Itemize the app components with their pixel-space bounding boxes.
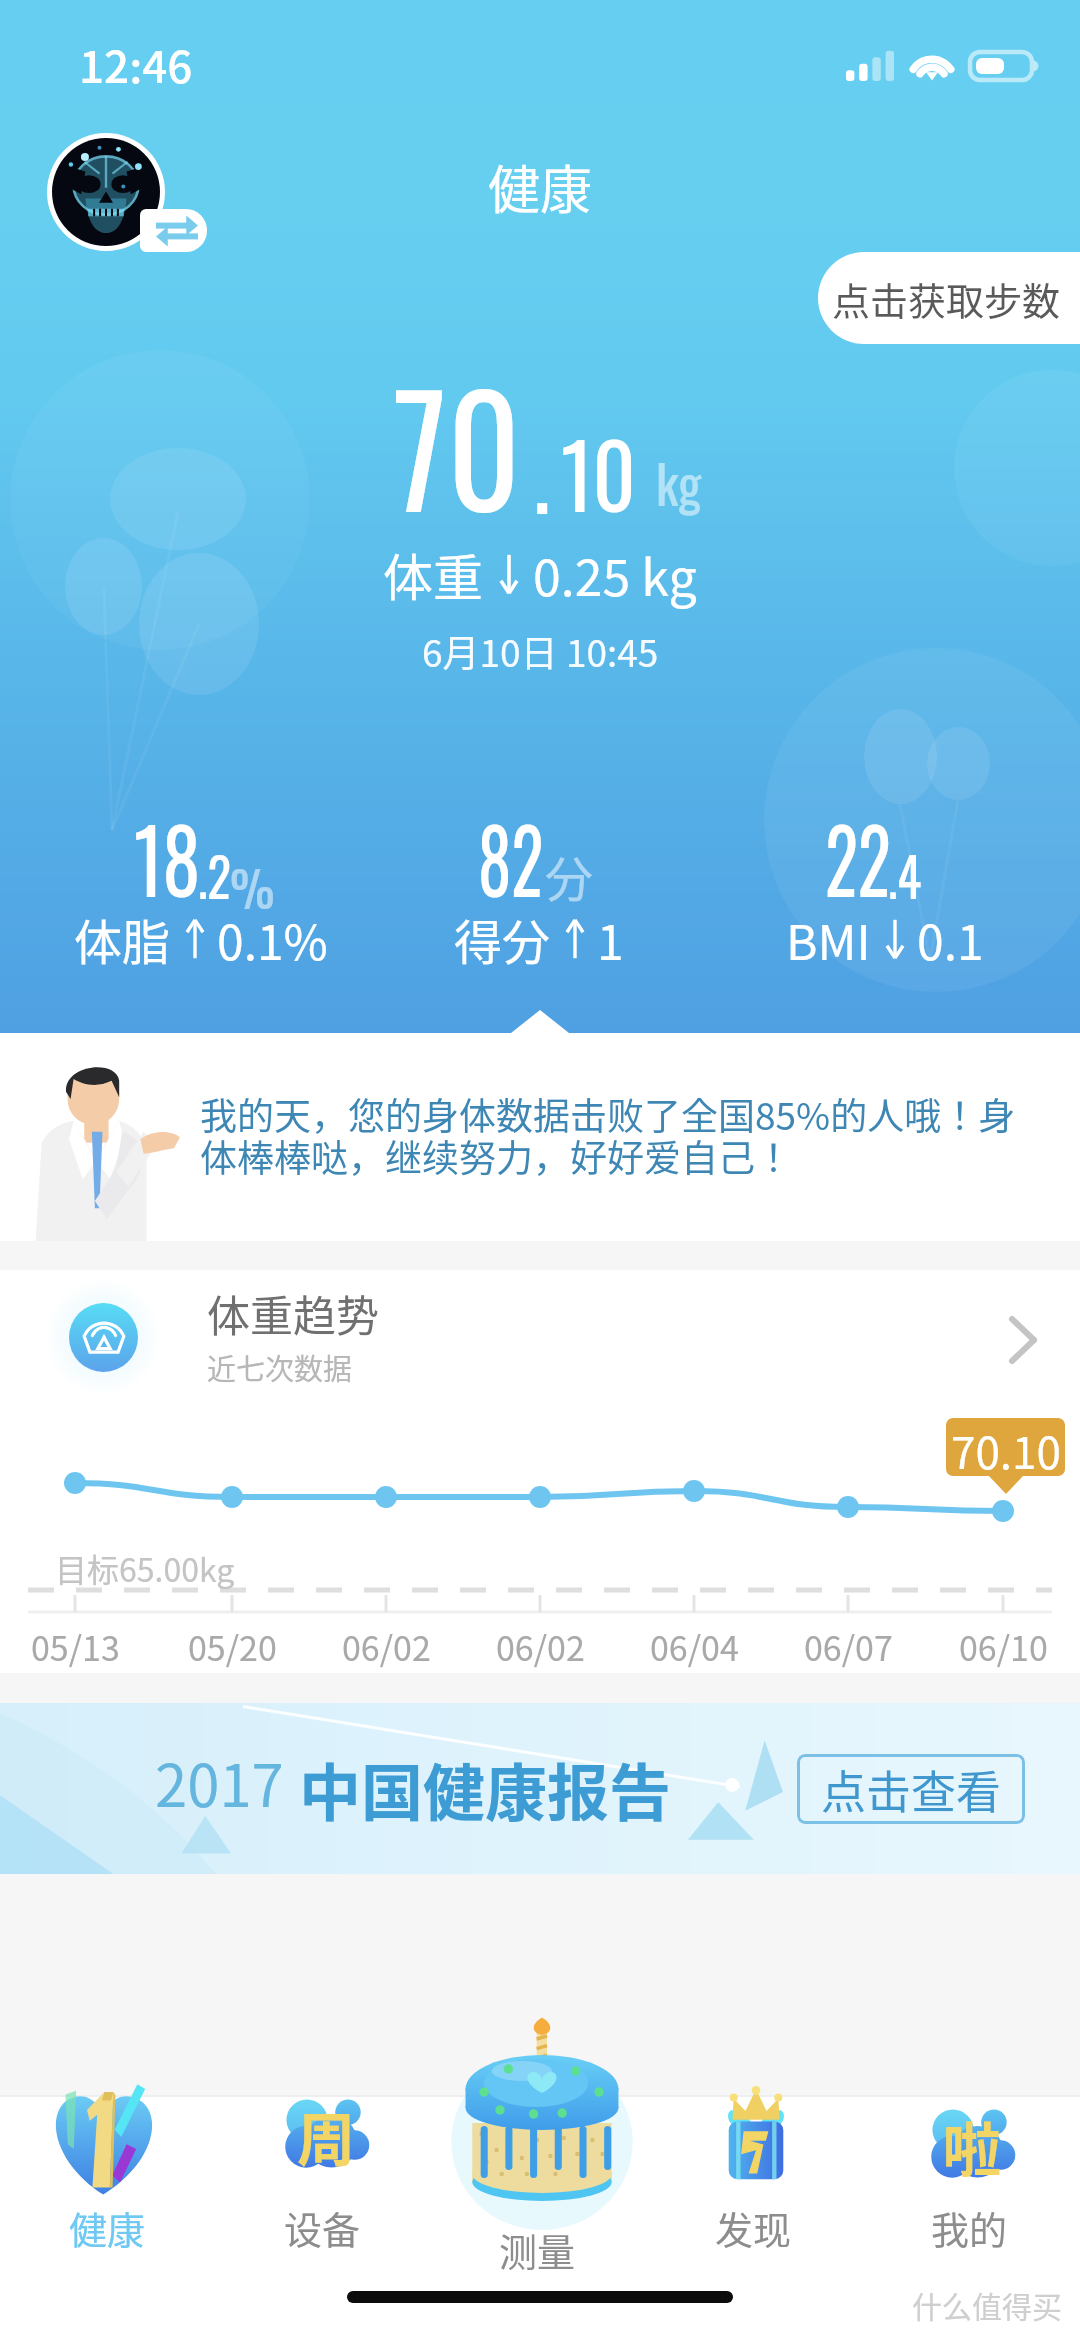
button[interactable] <box>0 2095 216 2339</box>
staticText: 06/02 <box>496 1622 585 1671</box>
button[interactable] <box>648 2095 864 2339</box>
staticText: 06/07 <box>804 1622 893 1671</box>
staticText: .4 <box>888 835 922 915</box>
button[interactable]: 点击获取步数 <box>818 252 1080 344</box>
staticText: . <box>533 407 550 540</box>
staticText: kg <box>656 444 702 521</box>
staticText: 点击查看 <box>821 1757 1002 1822</box>
staticText: BMI <box>786 904 871 974</box>
button[interactable]: 点击查看 <box>797 1754 1025 1824</box>
staticText: 22 <box>825 792 891 922</box>
staticText: 得分 <box>454 904 551 974</box>
staticText: 0.1 <box>917 904 984 974</box>
staticText: 1 <box>597 904 624 974</box>
staticText: 05/13 <box>31 1622 120 1671</box>
staticText: 设备 <box>284 2200 361 2255</box>
staticText: 06/10 <box>959 1622 1048 1671</box>
staticText: 06/04 <box>650 1622 739 1671</box>
staticText: 06/02 <box>342 1622 431 1671</box>
staticText: 分 <box>545 841 594 911</box>
staticText: 周 <box>297 2094 356 2178</box>
staticText: 05/20 <box>188 1622 277 1671</box>
staticText: 什么值得买 <box>912 2283 1062 2326</box>
staticText: 点击获取步数 <box>832 271 1061 326</box>
staticText: 目标65.00kg <box>55 1545 235 1591</box>
staticText: 体重 <box>383 538 483 610</box>
staticText: 啦 <box>943 2104 1002 2188</box>
button[interactable]: Profile avatar <box>47 131 165 252</box>
button[interactable] <box>216 2095 432 2339</box>
button[interactable]: Switch account <box>140 209 207 252</box>
staticText: 体重趋势 <box>207 1282 379 1344</box>
staticText: .2 <box>198 835 231 915</box>
staticText: 82 <box>478 792 543 922</box>
staticText: 10 <box>561 406 636 538</box>
button[interactable] <box>432 2095 648 2339</box>
staticText: 0.25 kg <box>533 538 697 610</box>
staticText: 测量 <box>499 2222 576 2277</box>
staticText: 0.1% <box>217 904 328 974</box>
staticText: 我的 <box>931 2200 1008 2255</box>
staticText: 中国健康报告 <box>299 1744 672 1834</box>
staticText: 我的天，您的身体数据击败了全国85%的人哦！身体棒棒哒，继续努力，好好爱自己！ <box>200 1087 1050 1182</box>
staticText: 70 <box>393 333 521 555</box>
staticText: 健康 <box>69 2200 146 2255</box>
staticText: 体脂 <box>74 904 171 974</box>
staticText: 2017 <box>155 1740 284 1824</box>
staticText: 18 <box>134 792 201 922</box>
staticText: % <box>230 849 275 923</box>
staticText: 发现 <box>715 2200 792 2255</box>
button[interactable] <box>864 2095 1080 2339</box>
staticText: 6月10日 10:45 <box>422 624 659 678</box>
staticText: 近七次数据 <box>207 1346 353 1388</box>
staticText: 70.10 <box>951 1418 1061 1476</box>
button[interactable]: 2017 <box>0 1703 1080 1874</box>
staticText: 健康 <box>488 149 593 224</box>
staticText: 12:46 <box>79 32 193 96</box>
button[interactable]: 体重趋势 <box>0 1270 1080 1410</box>
